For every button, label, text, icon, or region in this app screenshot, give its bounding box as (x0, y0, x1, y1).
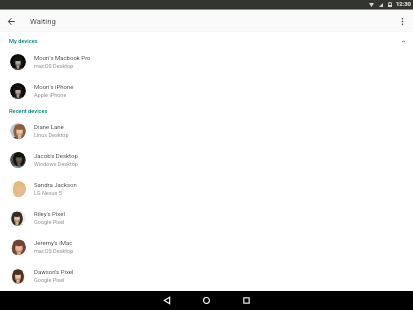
staticText: Dawson's Pixel (34, 268, 74, 275)
button[interactable]: Moori's iPhone (0, 76, 413, 105)
button[interactable]: Collapse section (396, 34, 411, 49)
button[interactable]: Dawson's Pixel (0, 261, 413, 290)
staticText: LG Nexus 5 (34, 190, 62, 196)
staticText: Moori's Macbook Pro (34, 54, 91, 61)
staticText: Waiting (30, 17, 56, 26)
button[interactable]: Sandra Jackson (0, 174, 413, 203)
staticText: Windows Desktop (34, 161, 78, 167)
button[interactable]: Jeremy's iMac (0, 232, 413, 261)
staticText: Linux Desktop (34, 132, 69, 138)
button[interactable]: Navigate up (0, 11, 22, 31)
staticText: Sandra Jackson (34, 181, 77, 188)
staticText: Recent devices (9, 108, 48, 115)
button[interactable]: Jacob's Desktop (0, 145, 413, 174)
button[interactable]: Riley's Pixel (0, 203, 413, 232)
button[interactable]: Home (197, 291, 216, 310)
staticText: Moori's iPhone (34, 83, 74, 90)
button[interactable]: Back (157, 291, 176, 310)
staticText: Google Pixel (34, 219, 65, 225)
staticText: My devices (9, 38, 38, 45)
staticText: Apple iPhone (34, 92, 67, 98)
staticText: Riley's Pixel (34, 210, 65, 217)
button[interactable]: Recent apps (237, 291, 256, 310)
staticText: macOS Desktop (34, 248, 74, 254)
staticText: Google Pixel (34, 277, 65, 283)
staticText: Jeremy's iMac (34, 239, 73, 246)
button[interactable]: Diane Lane (0, 116, 413, 145)
staticText: macOS Desktop (34, 63, 74, 69)
button[interactable]: Moori's Macbook Pro (0, 47, 413, 76)
staticText: Jacob's Desktop (34, 152, 78, 159)
button[interactable]: More options (391, 11, 413, 31)
staticText: 12:30 (396, 1, 411, 8)
staticText: Diane Lane (34, 123, 64, 130)
